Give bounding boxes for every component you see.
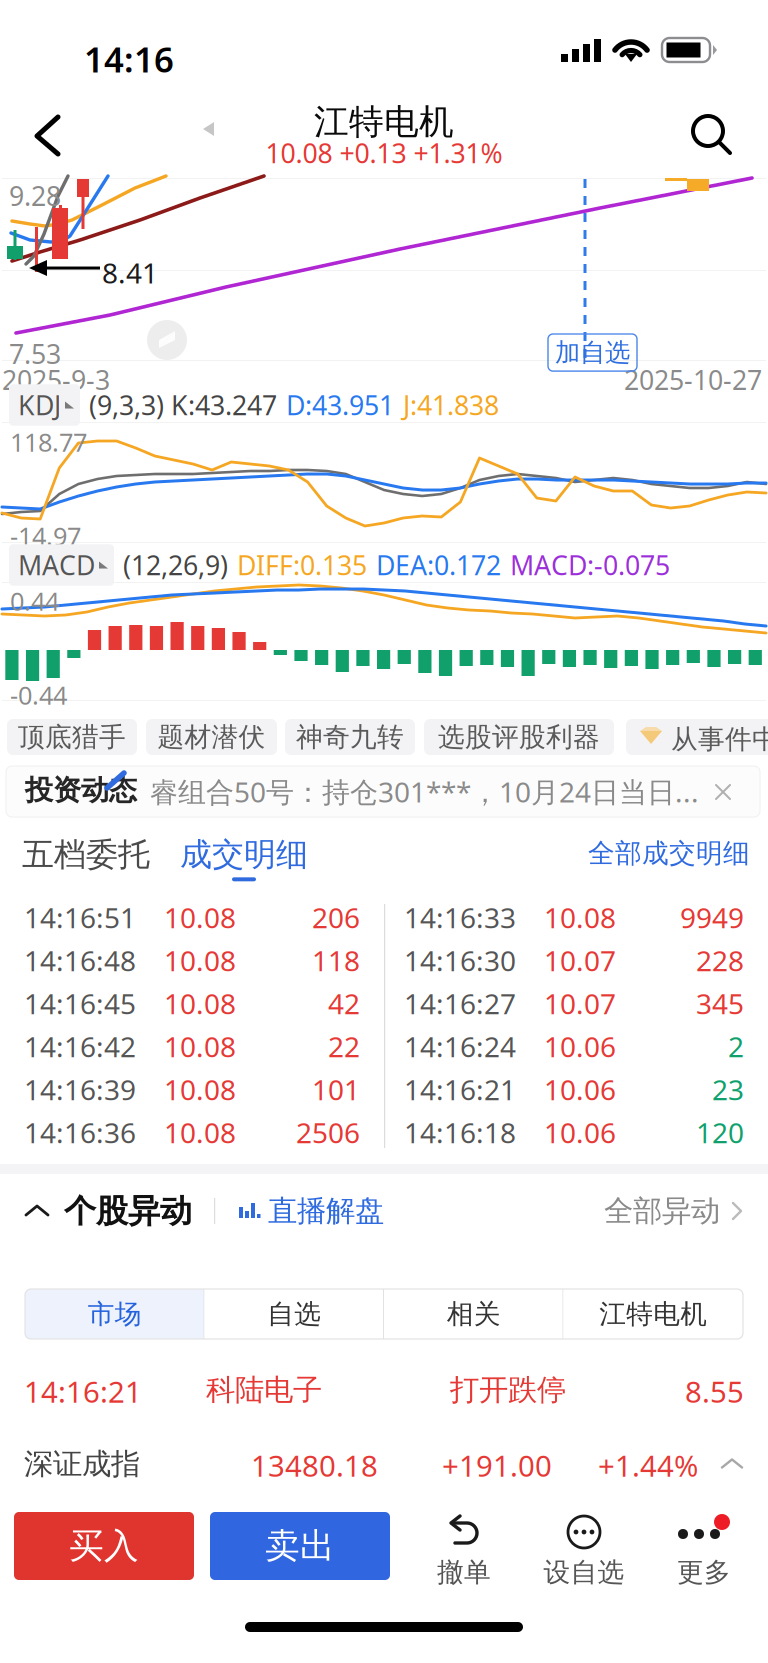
staticText: 市场 [88, 1298, 142, 1330]
staticText: 江特电机 [599, 1298, 707, 1330]
staticText: D:43.951 [286, 387, 394, 423]
staticText: 江特电机 [314, 101, 454, 143]
staticText: MACD [18, 547, 95, 583]
staticText: 14:16:21 [404, 1071, 516, 1108]
staticText: 42 [328, 985, 360, 1022]
staticText: 10.06 [544, 1028, 616, 1065]
staticText: 8.41 [102, 254, 158, 291]
button[interactable]: 买入 [14, 1512, 194, 1580]
button[interactable]: Close [700, 769, 746, 815]
staticText: 22 [328, 1028, 360, 1065]
staticText: 0.44 [10, 584, 59, 618]
staticText: +1.44% [598, 1446, 698, 1485]
staticText: 10.06 [544, 1114, 616, 1151]
staticText: 10.06 [544, 1071, 616, 1108]
staticText: (9,3,3) K:43.247 [89, 387, 277, 423]
staticText: 14:16:45 [24, 985, 136, 1022]
button[interactable]: 成交明细 [180, 835, 308, 881]
staticText: 14:16:27 [404, 985, 516, 1022]
staticText: 10.08 [164, 942, 236, 979]
button[interactable]: Search [668, 92, 754, 168]
staticText: 自选 [267, 1298, 321, 1330]
button[interactable]: 撤单 [414, 1512, 514, 1589]
staticText: 10.08 +0.13 +1.31% [265, 135, 502, 171]
staticText: (12,26,9) [123, 547, 228, 583]
button[interactable]: 全部异动 [604, 1193, 744, 1229]
staticText: 13480.18 [251, 1446, 378, 1485]
staticText: 9949 [680, 899, 744, 936]
staticText: 345 [696, 985, 744, 1022]
staticText: 投资动态 [25, 773, 137, 807]
staticText: 成交明细 [180, 835, 308, 874]
button[interactable]: 卖出 [210, 1512, 390, 1580]
staticText: 101 [312, 1071, 360, 1108]
staticText: 2 [728, 1028, 744, 1065]
button[interactable]: Back [0, 92, 84, 168]
button[interactable]: 全部成交明细 [588, 837, 750, 870]
staticText: 9.28 [9, 178, 61, 213]
staticText: 从事件中 [671, 723, 768, 756]
staticText: 顶底猎手 [18, 721, 126, 753]
button[interactable]: 更多 [654, 1512, 754, 1589]
staticText: 14:16:24 [404, 1028, 516, 1065]
staticText: 10.08 [164, 1071, 236, 1108]
staticText: 120 [696, 1114, 744, 1151]
staticText: KDJ [18, 387, 61, 423]
staticText: 深证成指 [24, 1446, 140, 1482]
staticText: 118.77 [10, 425, 87, 459]
staticText: 科陆电子 [206, 1372, 322, 1408]
staticText: 14:16:21 [24, 1372, 142, 1411]
staticText: 14:16:51 [24, 899, 136, 936]
button[interactable]: 从事件中 [626, 719, 768, 755]
staticText: 2025-10-27 [624, 362, 762, 397]
staticText: -14.97 [10, 519, 81, 553]
button[interactable]: 江特电机 [563, 1289, 743, 1339]
staticText: 直播解盘 [268, 1193, 384, 1229]
button[interactable]: 题材潜伏 [146, 719, 277, 755]
staticText: 14:16:33 [404, 899, 516, 936]
staticText: DIFF:0.135 [237, 547, 367, 583]
staticText: 14:16 [84, 36, 174, 82]
button[interactable]: 选股评股利器 [424, 719, 614, 755]
staticText: 228 [696, 942, 744, 979]
staticText: 2506 [296, 1114, 360, 1151]
staticText: 五档委托 [22, 835, 150, 874]
staticText: 14:16:18 [404, 1114, 516, 1151]
button[interactable]: 五档委托 [22, 835, 150, 874]
button[interactable]: 设自选 [534, 1512, 634, 1589]
staticText: 14:16:36 [24, 1114, 136, 1151]
staticText: 8.55 [685, 1372, 744, 1411]
staticText: 10.08 [164, 1028, 236, 1065]
staticText: 买入 [69, 1525, 139, 1567]
staticText: 206 [312, 899, 360, 936]
staticText: 14:16:48 [24, 942, 136, 979]
staticText: 卖出 [265, 1525, 335, 1567]
staticText: 选股评股利器 [438, 721, 600, 753]
staticText: 10.08 [164, 1114, 236, 1151]
button[interactable]: 自选 [204, 1289, 384, 1339]
staticText: 全部异动 [604, 1193, 720, 1229]
staticText: DEA:0.172 [376, 547, 501, 583]
staticText: -0.44 [10, 678, 67, 712]
staticText: 题材潜伏 [157, 721, 265, 753]
staticText: +191.00 [442, 1446, 552, 1485]
staticText: 14:16:39 [24, 1071, 136, 1108]
staticText: 10.08 [164, 899, 236, 936]
staticText: 23 [712, 1071, 744, 1108]
button[interactable]: 神奇九转 [285, 719, 415, 755]
staticText: 打开跌停 [450, 1372, 566, 1408]
button[interactable]: 顶底猎手 [7, 719, 137, 755]
staticText: 10.07 [544, 942, 616, 979]
staticText: 7.53 [9, 336, 61, 371]
button[interactable]: 直播解盘 [238, 1193, 384, 1229]
staticText: 更多 [677, 1556, 731, 1589]
button[interactable]: 市场 [25, 1289, 204, 1339]
staticText: 118 [312, 942, 360, 979]
button[interactable]: 相关 [384, 1289, 563, 1339]
staticText: 2025-9-3 [2, 362, 110, 397]
staticText: MACD:-0.075 [510, 547, 670, 583]
staticText: 全部成交明细 [588, 837, 750, 870]
staticText: 10.08 [544, 899, 616, 936]
staticText: 10.07 [544, 985, 616, 1022]
staticText: 14:16:42 [24, 1028, 136, 1065]
